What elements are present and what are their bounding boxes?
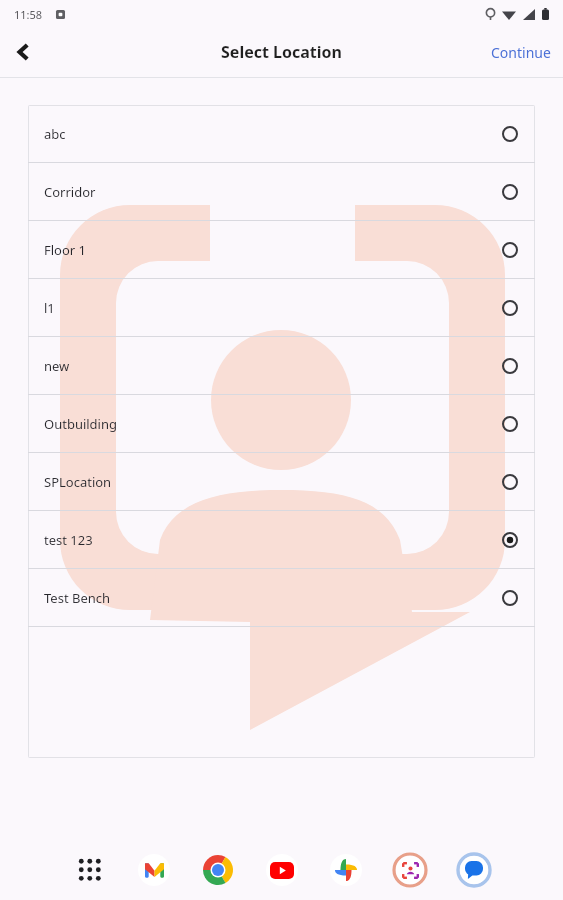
button[interactable]: Chrome — [200, 852, 236, 888]
button[interactable]: abc — [28, 105, 535, 163]
button[interactable]: Floor 1 — [28, 221, 535, 279]
button[interactable]: Google Photos — [328, 852, 364, 888]
staticText: Corridor — [44, 183, 96, 201]
staticText: Select Location — [221, 41, 342, 63]
staticText: Test Bench — [44, 589, 111, 607]
button[interactable]: test 123 — [28, 511, 535, 569]
button[interactable]: Gmail — [136, 852, 172, 888]
button[interactable]: Test Bench — [28, 569, 535, 627]
staticText: l1 — [44, 299, 55, 317]
staticText: Continue — [491, 43, 551, 62]
staticText: abc — [44, 125, 66, 143]
staticText: Outbuilding — [44, 415, 117, 433]
button[interactable]: Photo Scan — [392, 852, 428, 888]
button[interactable]: YouTube — [264, 852, 300, 888]
staticText: Floor 1 — [44, 241, 87, 259]
button[interactable]: SPLocation — [28, 453, 535, 511]
staticText: test 123 — [44, 531, 93, 549]
button[interactable]: Back — [0, 28, 48, 76]
staticText: SPLocation — [44, 473, 112, 491]
staticText: 11:58 — [14, 7, 43, 22]
button[interactable]: Corridor — [28, 163, 535, 221]
button[interactable]: Continue — [479, 33, 563, 72]
button[interactable]: Messages — [456, 852, 492, 888]
staticText: new — [44, 357, 70, 375]
button[interactable]: new — [28, 337, 535, 395]
button[interactable]: Outbuilding — [28, 395, 535, 453]
button[interactable]: All apps — [72, 852, 108, 888]
button[interactable]: l1 — [28, 279, 535, 337]
